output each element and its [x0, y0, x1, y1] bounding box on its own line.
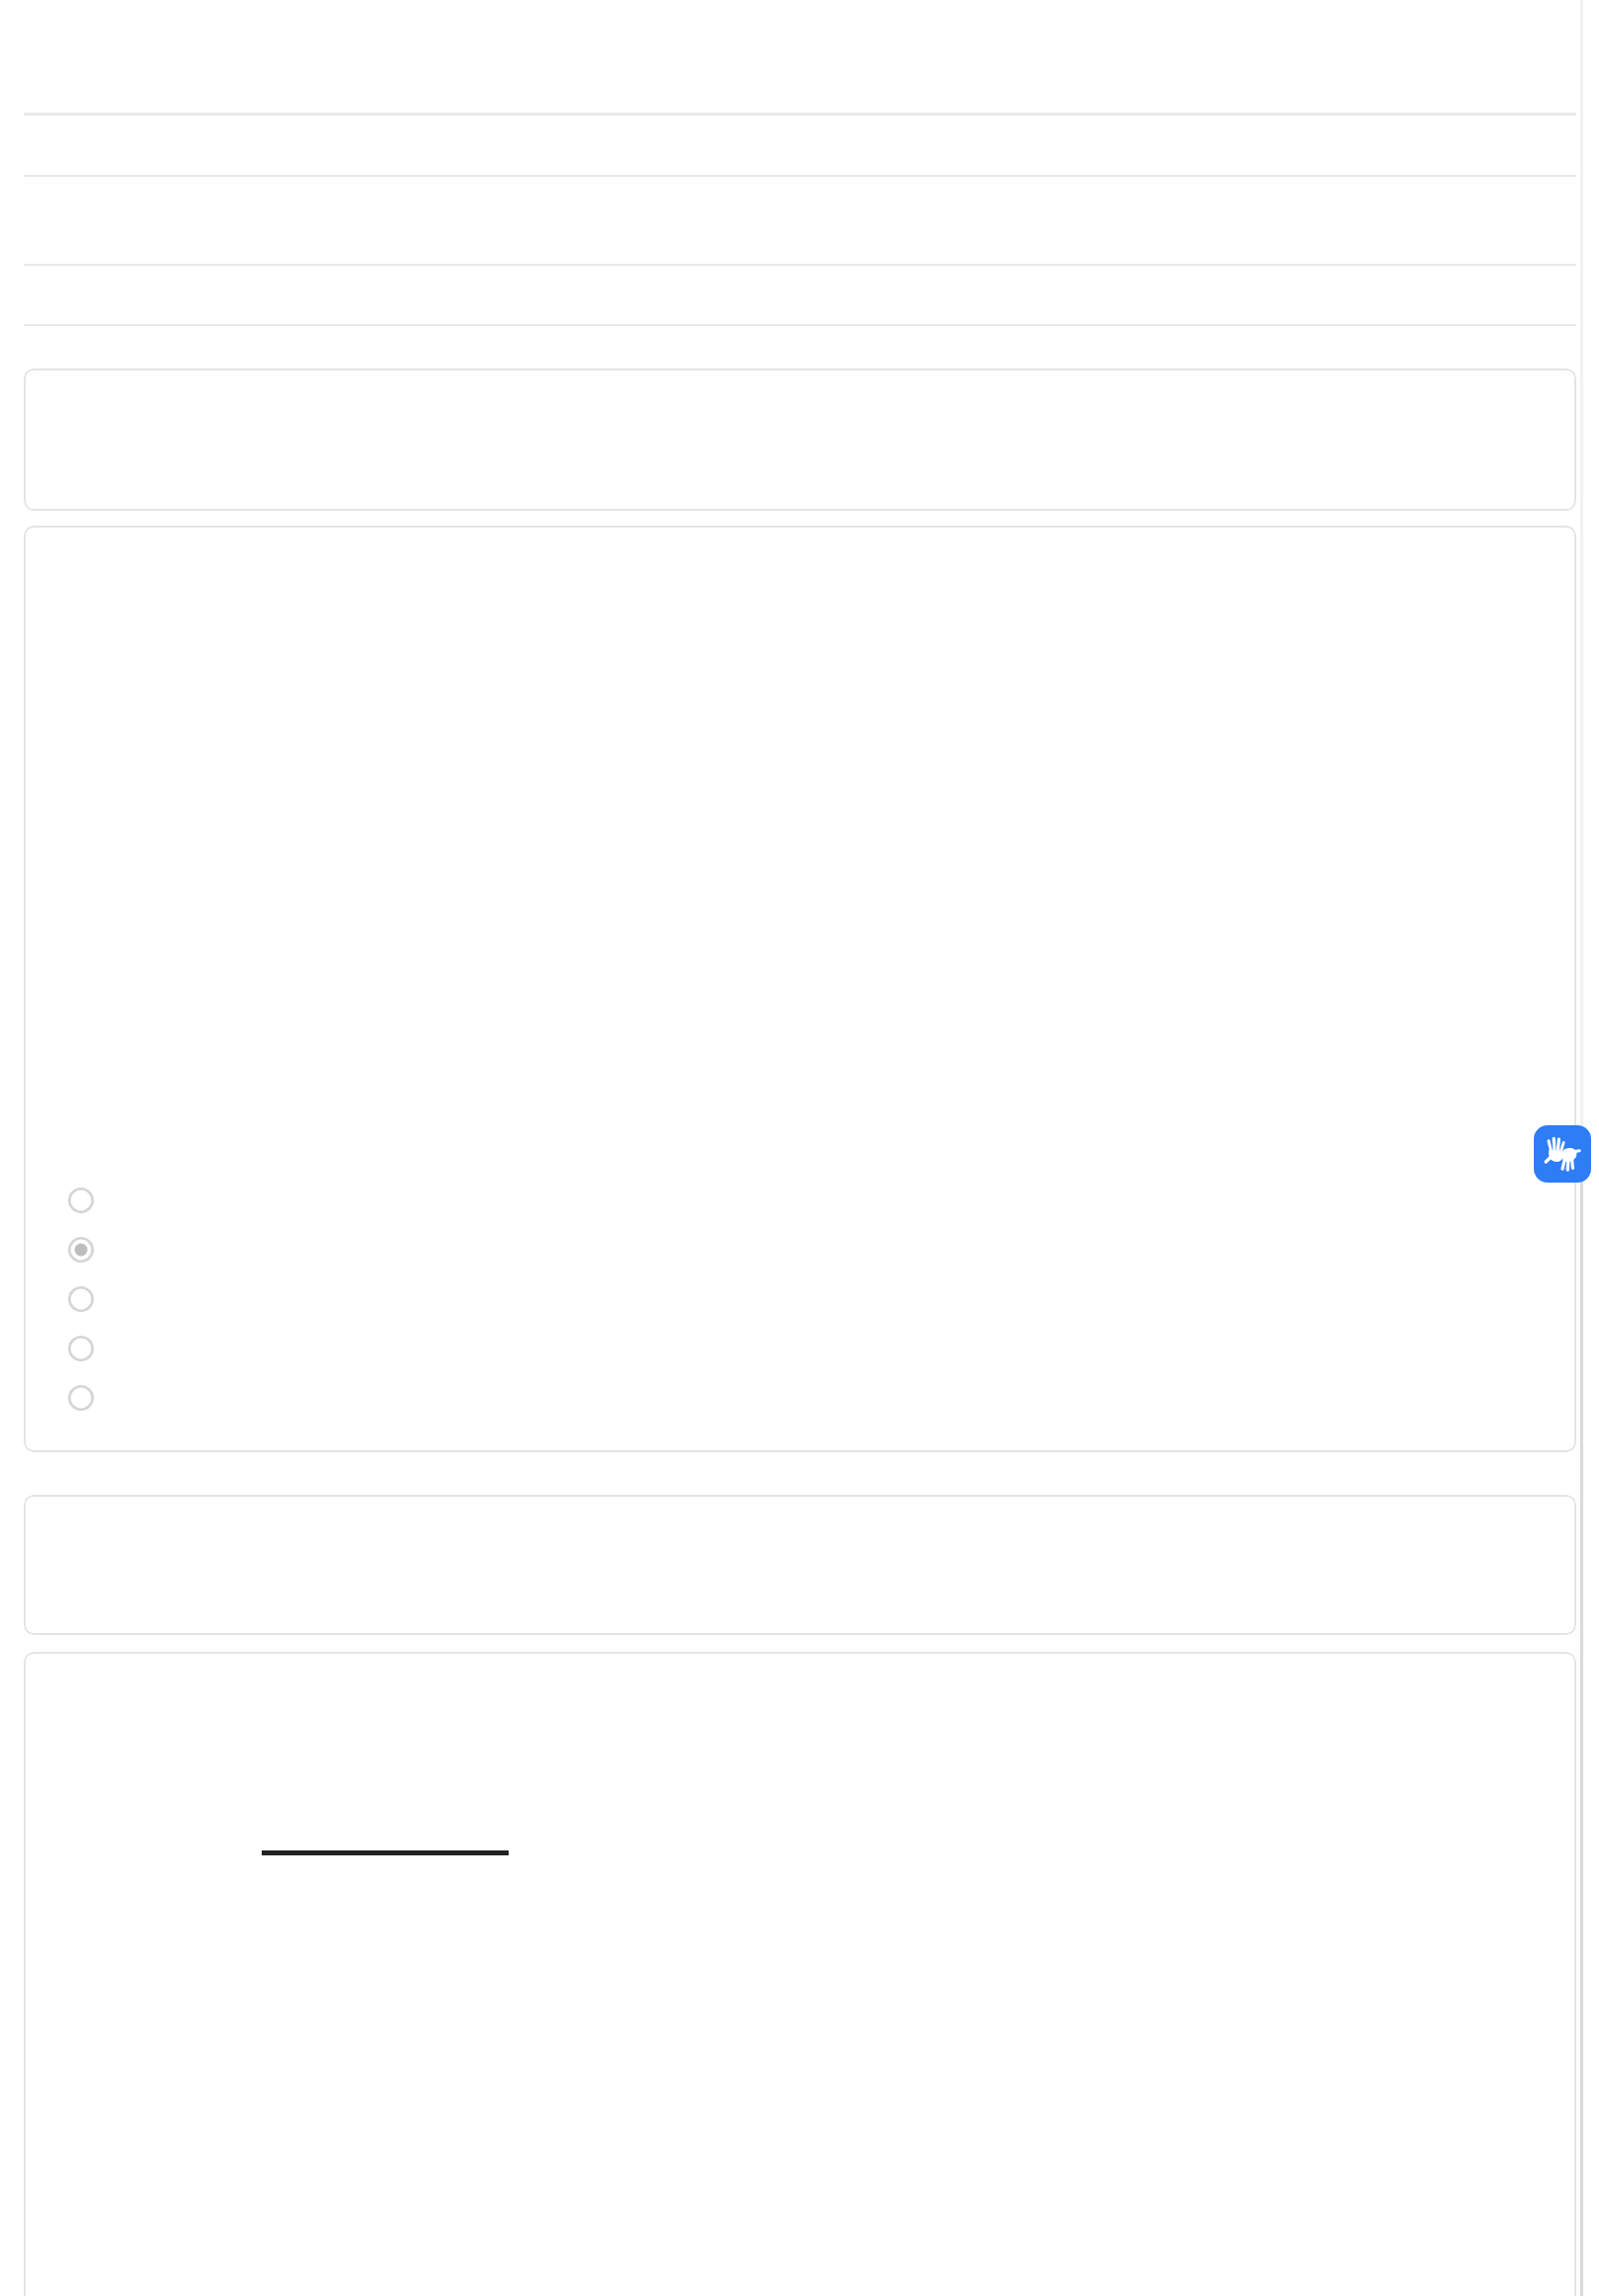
button[interactable]: Card three [24, 1495, 1576, 1635]
button[interactable]: Option 1 [59, 1179, 103, 1222]
button[interactable]: Option 4 [59, 1327, 103, 1370]
button[interactable]: Card four [24, 1652, 1576, 2296]
button[interactable]: Sign language accessibility [1534, 1125, 1591, 1183]
button[interactable]: Question card [24, 526, 1576, 1452]
button[interactable]: Option 2 [59, 1228, 103, 1271]
button[interactable]: Card one [24, 369, 1576, 511]
button[interactable]: Option 5 [59, 1376, 103, 1420]
button[interactable]: Option 3 [59, 1277, 103, 1321]
